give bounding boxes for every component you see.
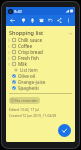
button[interactable]: Coffee [6, 43, 75, 49]
staticText: List item [20, 67, 38, 73]
staticText: Shopping list [9, 29, 67, 36]
button[interactable]: Spaghetti [6, 85, 75, 91]
button[interactable]: Reminder [28, 15, 37, 26]
staticText: Milk [18, 61, 27, 67]
button[interactable]: Done [58, 124, 71, 137]
button[interactable]: Archive [37, 15, 46, 26]
staticText: Spaghetti [18, 85, 39, 91]
staticText: 9:41 [14, 9, 22, 14]
button[interactable]: Fresh fish [6, 55, 75, 61]
button[interactable]: Milk [6, 61, 75, 67]
button[interactable]: Chilli sauce [6, 37, 75, 43]
staticText: Crisp bread [18, 49, 43, 55]
button[interactable]: Olive oil [6, 73, 75, 79]
staticText: Fresh fish [18, 55, 39, 61]
staticText: Coffee [18, 43, 33, 49]
staticText: Olive oil [18, 73, 36, 79]
button[interactable]: No reminder [9, 97, 40, 104]
button[interactable]: Share [55, 15, 64, 26]
button[interactable]: Crisp bread [6, 49, 75, 55]
staticText: Orange juice [18, 79, 46, 85]
staticText: Edited 13:42, 17 Jul [9, 107, 40, 112]
button[interactable]: Pin note [19, 15, 28, 26]
button[interactable]: Undo [46, 15, 55, 26]
staticText: Chilli sauce [18, 37, 43, 43]
staticText: Created 12 Jun 2019, 11:04:08 [9, 113, 57, 118]
button[interactable]: List item [6, 67, 75, 73]
button[interactable]: More options [64, 15, 73, 26]
staticText: No reminder [15, 98, 38, 103]
button[interactable]: Orange juice [6, 79, 75, 85]
button[interactable]: Collapse [67, 30, 73, 36]
button[interactable]: Back [8, 15, 17, 26]
